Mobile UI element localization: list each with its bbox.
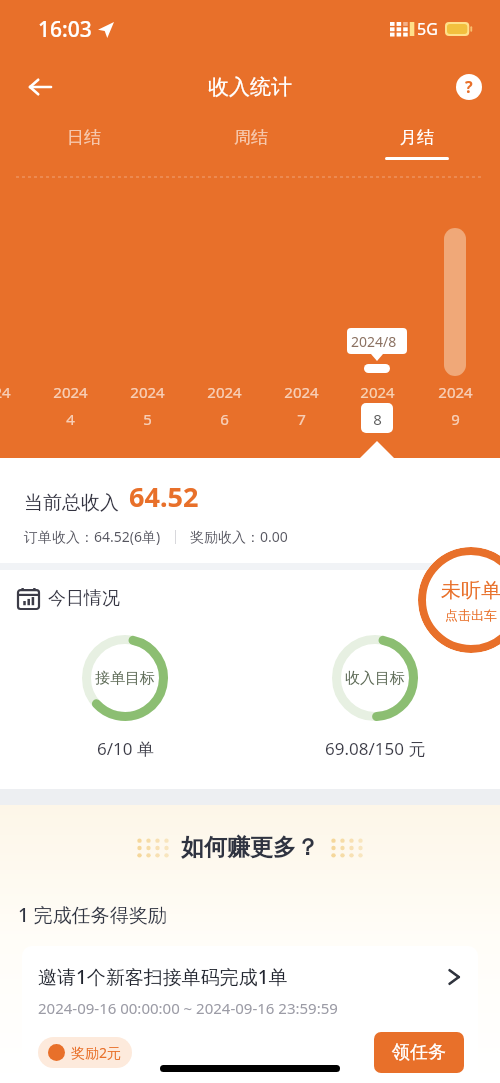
staticText: 4 [66,409,75,429]
staticText: 2024 [360,382,395,402]
staticText: 2024 [53,382,88,402]
staticText: 点击出车 [445,607,497,623]
staticText: 6/10 单 [97,737,154,760]
button[interactable]: 邀请1个新客扫接单码完成1单 [22,946,478,1083]
staticText: 69.08/150 元 [325,737,426,760]
staticText: 8 [373,409,382,429]
staticText: 周结 [234,127,268,148]
staticText: 订单收入：64.52(6单) [24,527,161,546]
staticText: 收入目标 [345,669,405,688]
button[interactable]: 周结 [167,116,334,171]
staticText: 64.52 [129,478,199,515]
staticText: 2024 [0,382,11,402]
staticText: 2024/8 [351,332,397,351]
button[interactable]: Back [18,65,62,109]
staticText: 1 完成任务得奖励 [18,902,167,928]
staticText: 日结 [67,127,101,148]
staticText: 2024-09-16 00:00:00 ~ 2024-09-16 23:59:5… [38,998,338,1018]
staticText: 7 [297,409,306,429]
staticText: 2024 [130,382,165,402]
staticText: 16:03 [38,15,92,44]
staticText: 2024 [284,382,319,402]
staticText: 奖励2元 [71,1043,122,1062]
staticText: 领任务 [392,1041,446,1064]
staticText: 9 [451,409,460,429]
staticText: 收入统计 [208,74,292,100]
button[interactable]: 月结 [333,116,500,171]
staticText: 奖励收入：0.00 [190,527,288,546]
staticText: 2024 [438,382,473,402]
button[interactable]: Help [456,74,482,100]
staticText: 6 [220,409,229,429]
staticText: 2024 [207,382,242,402]
staticText: 邀请1个新客扫接单码完成1单 [38,964,444,990]
staticText: 当前总收入 [24,491,119,515]
button[interactable]: 未听单 [418,547,500,653]
staticText: 5 [143,409,152,429]
staticText: 未听单 [441,578,500,603]
staticText: 接单目标 [95,669,155,688]
staticText: 月结 [400,127,434,148]
button[interactable]: 日结 [0,116,167,171]
staticText: 今日情况 [48,587,120,610]
staticText: 如何赚更多？ [181,833,319,862]
button[interactable]: 领任务 [392,1041,446,1064]
staticText: ? [465,76,473,98]
staticText: 5G [417,18,438,40]
